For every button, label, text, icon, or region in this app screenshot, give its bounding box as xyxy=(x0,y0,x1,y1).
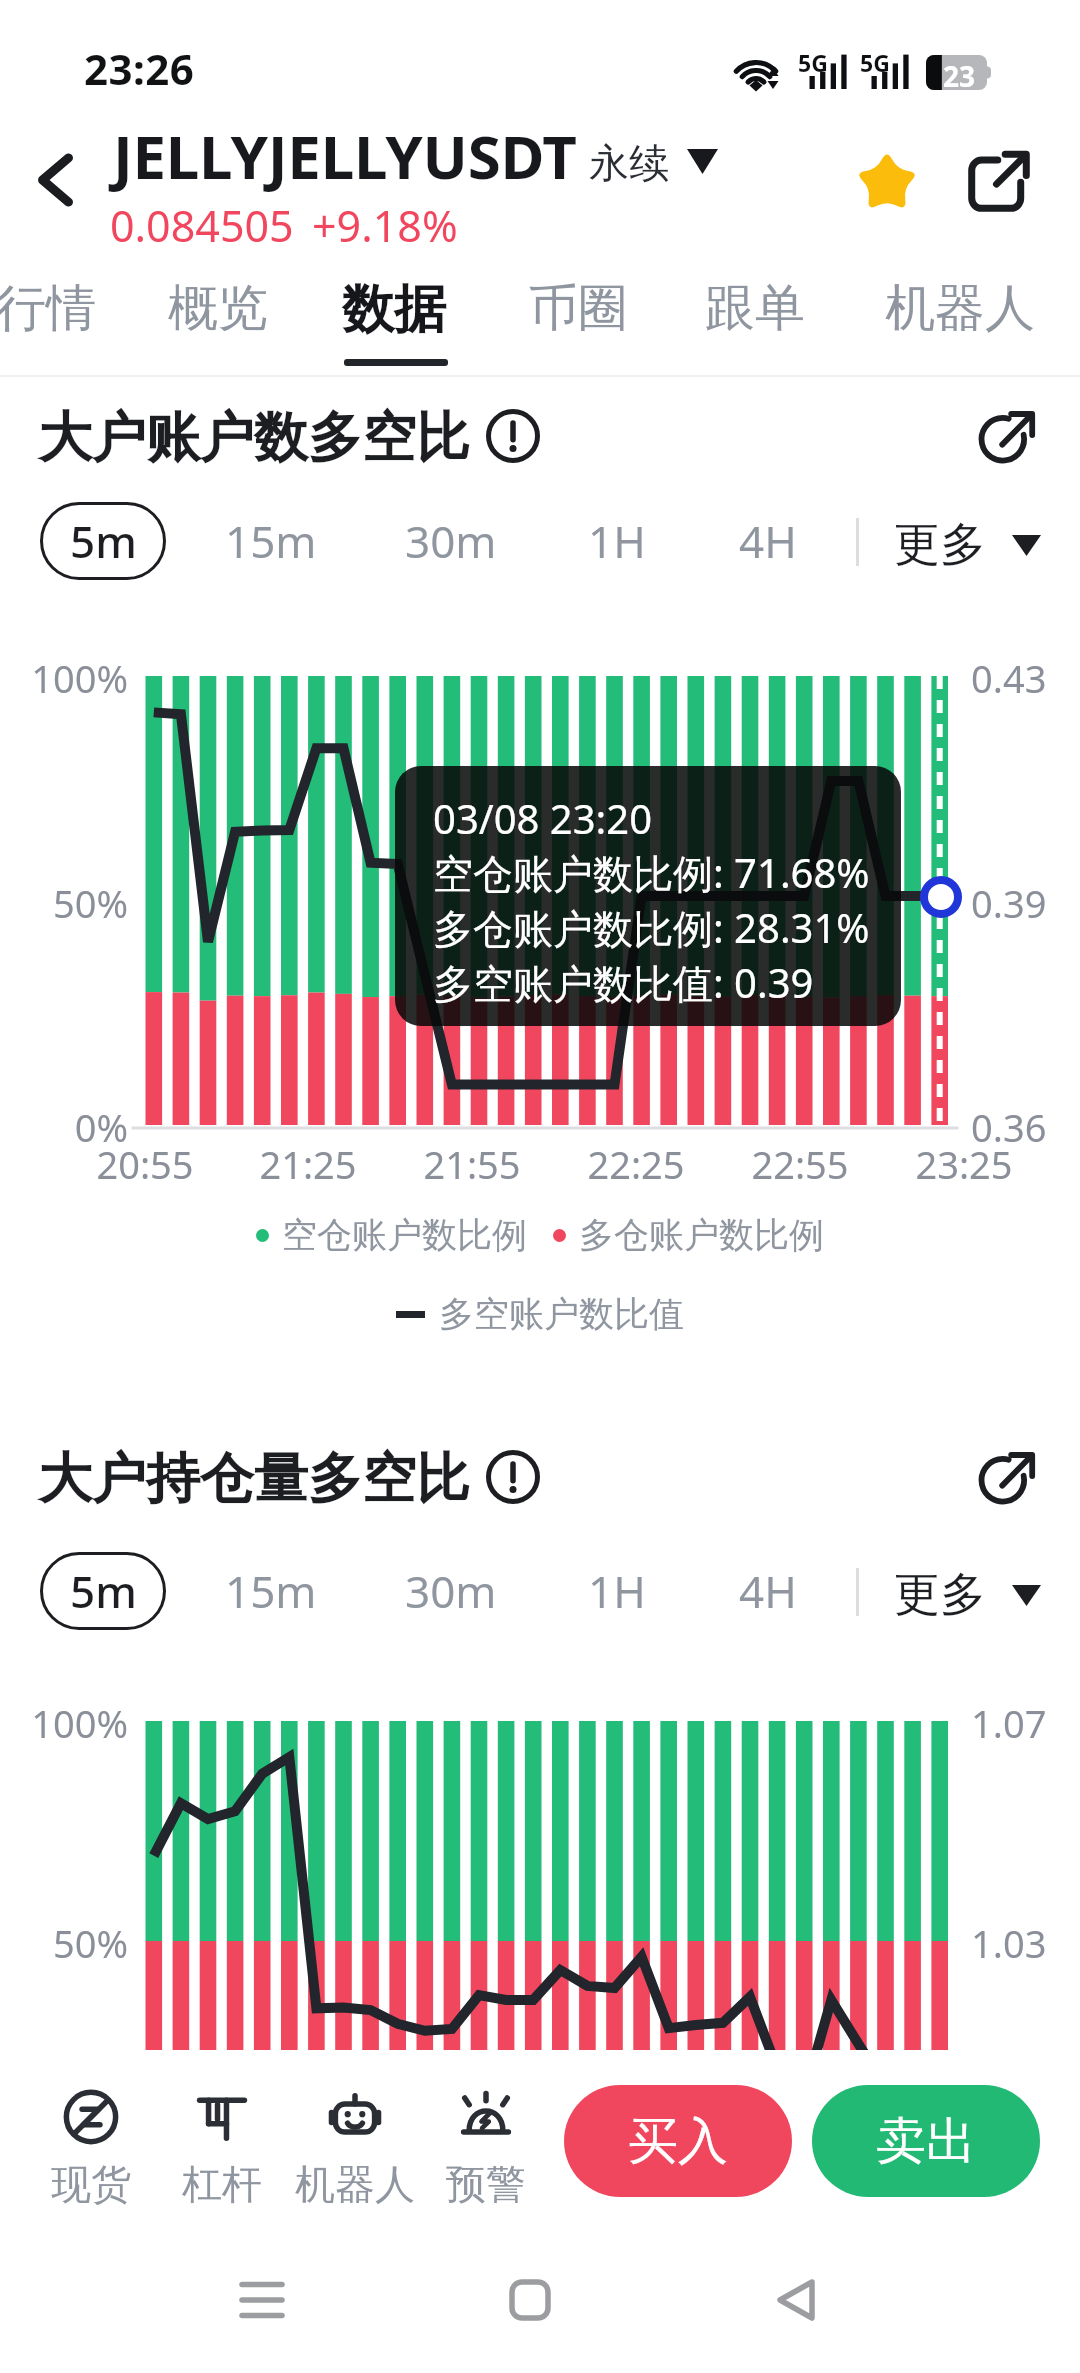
staticText: 0.43 xyxy=(971,652,1047,704)
staticText: 23:25 xyxy=(884,1138,1044,1190)
button[interactable]: Favorite xyxy=(846,140,928,222)
button[interactable]: Recents xyxy=(182,2245,342,2355)
staticText: 0.36 xyxy=(971,1101,1047,1153)
staticText: 大户持仓量多空比 xyxy=(38,1445,470,1513)
staticText: 50% xyxy=(8,877,128,929)
staticText: 买入 xyxy=(628,2110,728,2173)
staticText: 0.39 xyxy=(971,877,1047,929)
staticText: 币圈 xyxy=(528,277,628,340)
staticText: 22:25 xyxy=(556,1138,716,1190)
staticText: 15m xyxy=(225,511,317,571)
staticText: 5m xyxy=(70,511,137,571)
staticText: 多仓账户数比例 xyxy=(579,1213,824,1257)
button[interactable]: Back xyxy=(10,134,102,226)
button[interactable]: Back xyxy=(715,2245,875,2355)
staticText: 50% xyxy=(8,1917,128,1969)
staticText: 0% xyxy=(8,1101,128,1153)
staticText: 23:26 xyxy=(84,40,195,97)
staticText: 20:55 xyxy=(65,1138,225,1190)
button[interactable]: 5m xyxy=(40,502,166,580)
button[interactable]: 概览 xyxy=(153,258,283,375)
staticText: 30m xyxy=(405,511,497,571)
button[interactable]: 买入 xyxy=(564,2085,792,2197)
button[interactable]: Home xyxy=(450,2245,610,2355)
button[interactable]: 5m xyxy=(40,1552,166,1630)
button[interactable]: Info xyxy=(482,405,544,467)
staticText: 0.084505 xyxy=(110,196,294,255)
staticText: 1H xyxy=(588,1561,646,1621)
staticText: 机器人 xyxy=(295,2159,415,2209)
staticText: 大户账户数多空比 xyxy=(38,404,470,472)
staticText: 数据 xyxy=(342,277,446,343)
staticText: 100% xyxy=(8,652,128,704)
button[interactable]: 1H xyxy=(547,1552,687,1630)
staticText: 4H xyxy=(739,1561,797,1621)
button[interactable]: 30m xyxy=(381,502,521,580)
button[interactable]: 机器人 xyxy=(870,258,1050,375)
staticText: 概览 xyxy=(168,277,268,340)
staticText: 多仓账户数比例: 28.31% xyxy=(433,900,870,955)
button[interactable]: 更多 xyxy=(894,506,1041,584)
button[interactable]: 更多 xyxy=(894,1556,1041,1634)
staticText: 15m xyxy=(225,1561,317,1621)
staticText: 21:25 xyxy=(228,1138,388,1190)
staticText: 5G xyxy=(860,47,890,78)
staticText: 预警 xyxy=(446,2159,526,2209)
staticText: 更多 xyxy=(894,516,986,574)
staticText: 5G xyxy=(798,47,828,78)
button[interactable]: 数据 xyxy=(329,258,459,375)
staticText: 空仓账户数比例: 71.68% xyxy=(433,845,870,900)
button[interactable]: 1H xyxy=(547,502,687,580)
staticText: +9.18% xyxy=(312,196,458,255)
staticText: 23 xyxy=(943,57,976,92)
button[interactable]: 卖出 xyxy=(812,2085,1040,2197)
staticText: 空仓账户数比例 xyxy=(282,1213,527,1257)
button[interactable]: 跟单 xyxy=(690,258,820,375)
staticText: 永续 xyxy=(589,138,669,188)
staticText: 03/08 23:20 xyxy=(433,791,653,845)
staticText: 杠杆 xyxy=(182,2159,262,2209)
button[interactable]: Expand xyxy=(968,396,1046,474)
staticText: 30m xyxy=(405,1561,497,1621)
staticText: 多空账户数比值 xyxy=(439,1292,684,1336)
staticText: 5m xyxy=(70,1561,137,1621)
button[interactable]: 币圈 xyxy=(513,258,643,375)
button[interactable]: 机器人 xyxy=(285,2060,425,2210)
button[interactable]: 15m xyxy=(201,1552,341,1630)
button[interactable]: 4H xyxy=(698,502,838,580)
staticText: 更多 xyxy=(894,1566,986,1624)
staticText: 1.03 xyxy=(971,1917,1047,1969)
staticText: 卖出 xyxy=(876,2110,976,2173)
staticText: 100% xyxy=(8,1697,128,1749)
staticText: 跟单 xyxy=(705,277,805,340)
staticText: 1H xyxy=(588,511,646,571)
button[interactable]: 现货 xyxy=(21,2060,161,2210)
staticText: 4H xyxy=(739,511,797,571)
button[interactable]: Expand xyxy=(968,1437,1046,1515)
button[interactable]: 杠杆 xyxy=(152,2060,292,2210)
button[interactable]: 行情 xyxy=(0,258,111,375)
staticText: JELLYJELLYUSDT xyxy=(113,115,577,197)
staticText: 21:55 xyxy=(392,1138,552,1190)
staticText: 行情 xyxy=(0,277,96,340)
button[interactable]: 15m xyxy=(201,502,341,580)
button[interactable]: 预警 xyxy=(416,2060,556,2210)
button[interactable]: 30m xyxy=(381,1552,521,1630)
staticText: 1.07 xyxy=(971,1697,1047,1749)
button[interactable]: Info xyxy=(482,1446,544,1508)
button[interactable]: Share xyxy=(958,140,1040,222)
button[interactable]: 4H xyxy=(698,1552,838,1630)
staticText: 现货 xyxy=(51,2159,131,2209)
staticText: 多空账户数比值: 0.39 xyxy=(433,955,814,1010)
staticText: 22:55 xyxy=(720,1138,880,1190)
staticText: 机器人 xyxy=(885,277,1035,340)
